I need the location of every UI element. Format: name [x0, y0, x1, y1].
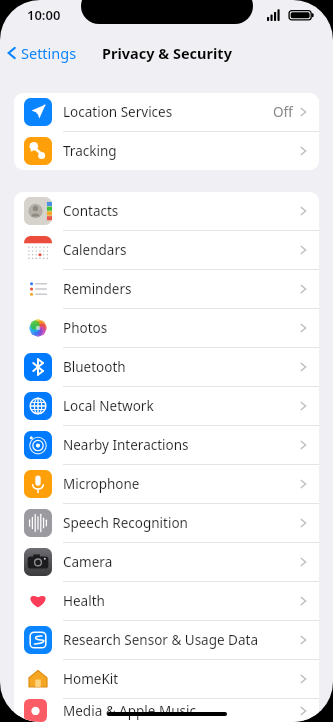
staticText: Speech Recognition — [63, 514, 188, 532]
button[interactable]: Settings — [0, 39, 85, 67]
button[interactable]: Research Sensor & Usage Data — [14, 621, 319, 660]
staticText: Off — [273, 103, 293, 121]
staticText: Contacts — [63, 202, 119, 220]
staticText: Nearby Interactions — [63, 436, 189, 454]
staticText: Health — [63, 592, 105, 610]
button[interactable]: Reminders — [14, 270, 319, 309]
staticText: Location Services — [63, 103, 173, 121]
staticText: Microphone — [63, 475, 140, 493]
button[interactable]: Photos — [14, 309, 319, 348]
button[interactable]: Location Services — [14, 93, 319, 132]
staticText: Photos — [63, 319, 108, 337]
button[interactable]: Calendars — [14, 231, 319, 270]
button[interactable]: Speech Recognition — [14, 504, 319, 543]
staticText: Reminders — [63, 280, 132, 298]
staticText: Calendars — [63, 241, 127, 259]
button[interactable]: Media & Apple Music — [14, 699, 319, 722]
staticText: HomeKit — [63, 670, 119, 688]
button[interactable]: Contacts — [14, 192, 319, 231]
staticText: Settings — [21, 43, 77, 63]
button[interactable]: Nearby Interactions — [14, 426, 319, 465]
staticText: Camera — [63, 553, 113, 571]
staticText: 10:00 — [27, 6, 61, 24]
button[interactable]: Local Network — [14, 387, 319, 426]
staticText: Bluetooth — [63, 358, 126, 376]
button[interactable]: Health — [14, 582, 319, 621]
staticText: Research Sensor & Usage Data — [63, 631, 258, 649]
staticText: Local Network — [63, 397, 154, 415]
staticText: Privacy & Security — [102, 43, 232, 63]
button[interactable]: Camera — [14, 543, 319, 582]
staticText: Media & Apple Music — [63, 702, 196, 720]
staticText: Tracking — [63, 142, 117, 160]
button[interactable]: Tracking — [14, 132, 319, 170]
button[interactable]: Bluetooth — [14, 348, 319, 387]
button[interactable]: Microphone — [14, 465, 319, 504]
button[interactable]: HomeKit — [14, 660, 319, 699]
